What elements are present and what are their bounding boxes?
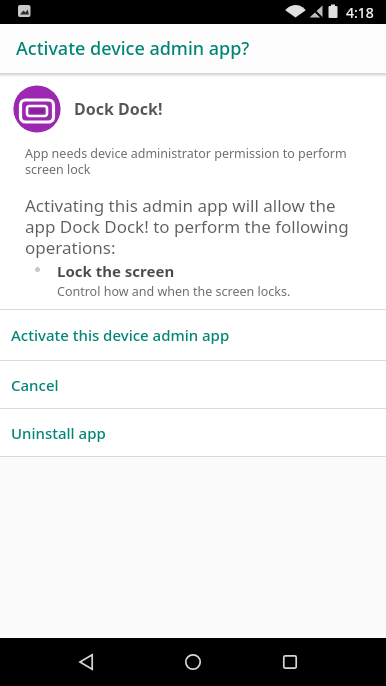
staticText: Dock Dock! — [74, 98, 163, 120]
button[interactable] — [266, 638, 314, 686]
button[interactable]: Uninstall app — [0, 409, 386, 456]
staticText: Cancel — [11, 375, 59, 395]
button[interactable] — [169, 638, 217, 686]
staticText: Activate this device admin app — [11, 325, 230, 345]
staticText: App needs device administrator permissio… — [25, 145, 347, 178]
staticText: Activate device admin app? — [16, 36, 250, 61]
staticText: Control how and when the screen locks. — [57, 283, 291, 300]
staticText: Lock the screen — [57, 261, 175, 281]
button[interactable]: Cancel — [0, 361, 386, 408]
button[interactable]: Activate this device admin app — [0, 310, 386, 360]
button[interactable] — [62, 638, 110, 686]
staticText: Uninstall app — [11, 423, 106, 443]
staticText: Activating this admin app will allow the… — [25, 194, 349, 259]
staticText: 4:18 — [346, 3, 374, 22]
